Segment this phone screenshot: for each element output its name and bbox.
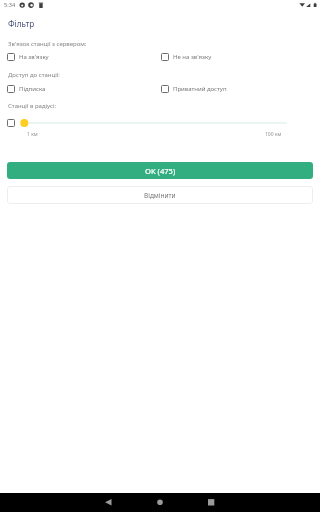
staticText: Відмінити (144, 191, 176, 200)
staticText: 100 км (265, 131, 282, 138)
staticText: Не на зв'язку (173, 53, 212, 61)
button[interactable]: Увімкнути радіус (4, 116, 17, 129)
button[interactable]: Recent apps (195, 493, 227, 512)
staticText: Доступ до станції: (8, 71, 60, 79)
staticText: 1 км (27, 131, 38, 138)
staticText: 5:34 (4, 1, 16, 9)
staticText: Підписка (19, 85, 46, 93)
button[interactable]: OK (475) (7, 162, 313, 179)
button[interactable]: Не на зв'язку (161, 52, 301, 62)
staticText: Станції в радіусі: (8, 102, 57, 110)
button[interactable]: Підписка (7, 84, 147, 94)
button[interactable]: Відмінити (7, 186, 313, 204)
button[interactable]: Home (144, 493, 176, 512)
staticText: Приватний доступ (173, 85, 227, 93)
staticText: Зв'язок станції з сервером: (8, 40, 87, 48)
button[interactable]: Радіус пошуку (18, 117, 293, 129)
button[interactable]: Приватний доступ (161, 84, 301, 94)
staticText: На зв'язку (19, 53, 49, 61)
staticText: OK (475) (145, 166, 176, 176)
button[interactable]: Back (94, 493, 126, 512)
button[interactable]: На зв'язку (7, 52, 147, 62)
staticText: Фільтр (8, 18, 35, 29)
